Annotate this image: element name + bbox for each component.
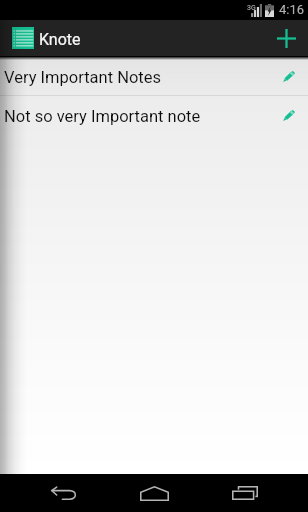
button[interactable]: Recent apps	[215, 474, 275, 512]
button[interactable]: Very Important Notes	[0, 57, 308, 95]
staticText: 3G	[247, 4, 256, 12]
button[interactable]: Not so very Important note	[0, 96, 308, 134]
button[interactable]: Edit note	[274, 61, 304, 91]
button[interactable]: Back	[34, 474, 94, 512]
button[interactable]: Add note	[268, 20, 304, 56]
staticText: Not so very Important note	[4, 107, 201, 126]
staticText: Knote	[39, 30, 81, 49]
button[interactable]: Edit note	[274, 100, 304, 130]
button[interactable]: Home	[124, 474, 184, 512]
staticText: Very Important Notes	[4, 68, 161, 87]
staticText: 4:16	[279, 2, 305, 17]
